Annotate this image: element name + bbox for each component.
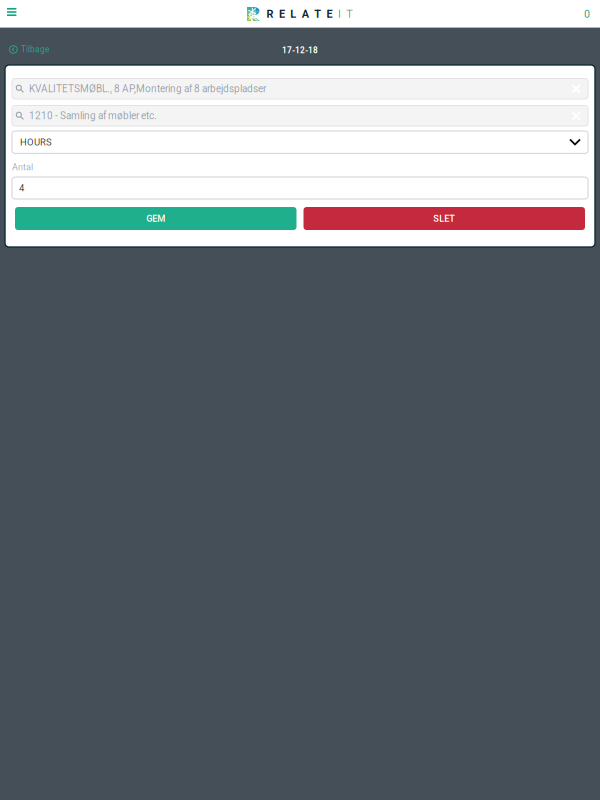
staticText: SLET <box>433 213 455 224</box>
button[interactable]: Tilbage <box>0 28 57 65</box>
staticText: GEM <box>146 213 165 224</box>
button[interactable]: HOURS <box>12 131 588 153</box>
staticText: R <box>267 8 274 20</box>
button[interactable]: SLET <box>303 207 585 230</box>
staticText: Tilbage <box>21 45 49 54</box>
staticText: A <box>302 8 309 20</box>
staticText: E <box>279 8 285 20</box>
button[interactable]: KVALITETSMØBL., 8 AP,Montering af 8 arbe… <box>12 78 588 99</box>
button[interactable]: Menu <box>0 0 26 28</box>
staticText: 17-12-18 <box>282 46 318 55</box>
staticText: 0 <box>584 8 590 20</box>
button[interactable]: Notifications <box>574 0 600 28</box>
staticText: Antal <box>12 162 33 172</box>
staticText: 4 <box>19 182 24 194</box>
staticText: I <box>338 8 341 20</box>
staticText: L <box>290 8 296 20</box>
staticText: T <box>314 8 321 20</box>
staticText: KVALITETSMØBL., 8 AP,Montering af 8 arbe… <box>29 83 266 95</box>
staticText: HOURS <box>20 137 52 148</box>
button[interactable]: 1210 - Samling af møbler etc. <box>12 105 588 126</box>
staticText: 1210 - Samling af møbler etc. <box>29 110 157 122</box>
staticText: E <box>327 8 333 20</box>
button[interactable]: GEM <box>15 207 296 230</box>
staticText: T <box>346 8 353 20</box>
